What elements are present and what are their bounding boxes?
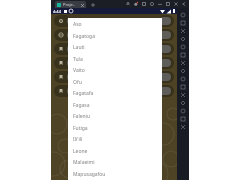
button[interactable]: Emulator control [177, 67, 189, 75]
button[interactable]: Lauti [68, 41, 162, 53]
button[interactable]: Notifications [132, 0, 140, 8]
button[interactable]: Emulator control [177, 35, 189, 43]
staticText: Tula [73, 56, 83, 63]
button[interactable]: New tab [89, 1, 96, 8]
button[interactable]: Emulator control [177, 107, 189, 115]
staticText: Fagatoga [73, 33, 95, 40]
staticText: Lauti [73, 44, 85, 51]
button[interactable]: Menu [180, 0, 188, 8]
staticText: Vaito [73, 67, 85, 74]
button[interactable]: Emulator control [177, 123, 189, 131]
button[interactable] [54, 15, 174, 27]
button[interactable]: Emulator control [177, 43, 189, 51]
button[interactable]: Close tab [80, 3, 84, 7]
button[interactable]: Profile [148, 0, 156, 8]
button[interactable] [54, 85, 174, 97]
staticText: Mapusagafou [73, 171, 106, 178]
button[interactable]: Fagasa [68, 99, 162, 111]
button[interactable]: Malaeimi [68, 156, 162, 168]
staticText: Futiga [73, 125, 88, 132]
button[interactable]: Aso [68, 18, 162, 30]
button[interactable] [54, 71, 174, 83]
staticText: Fagasa [73, 102, 90, 109]
button[interactable]: Emulator control [177, 59, 189, 67]
staticText: Proje.. [63, 2, 75, 7]
staticText: Leone [73, 148, 88, 155]
button[interactable]: Futiga [68, 122, 162, 134]
staticText: Fagatafa [73, 90, 94, 97]
button[interactable]: Apps [140, 0, 148, 8]
button[interactable]: Emulator control [177, 27, 189, 35]
button[interactable]: Vaito [68, 64, 162, 76]
button[interactable]: Emulator control [177, 91, 189, 99]
button[interactable]: Fagatafa [68, 87, 162, 99]
staticText: Malaeimi [73, 159, 95, 166]
staticText: Ofu [73, 79, 82, 86]
button[interactable]: Faleniu [68, 110, 162, 122]
button[interactable]: Ofu [68, 76, 162, 88]
button[interactable]: Mapusagafou [68, 168, 162, 180]
button[interactable] [54, 29, 174, 41]
button[interactable]: Emulator control [177, 75, 189, 83]
button[interactable]: Leone [68, 145, 162, 157]
button[interactable]: Emulator control [177, 83, 189, 91]
button[interactable]: Emulator control [177, 99, 189, 107]
button[interactable] [54, 43, 174, 55]
button[interactable]: Emulator control [177, 19, 189, 27]
button[interactable]: Ili'ili [68, 133, 162, 145]
button[interactable] [54, 57, 174, 69]
staticText: 4:44 [53, 9, 61, 14]
button[interactable]: Close [172, 0, 180, 8]
button[interactable]: Fagatoga [68, 30, 162, 42]
button[interactable]: Emulator control [177, 51, 189, 59]
button[interactable]: Tula [68, 53, 162, 65]
button[interactable]: Emulator control [177, 11, 189, 19]
button[interactable]: Proje.. [55, 1, 86, 8]
button[interactable]: Maximize [164, 0, 172, 8]
staticText: Aso [73, 21, 82, 28]
button[interactable]: Minimize [156, 0, 164, 8]
button[interactable]: Emulator control [177, 115, 189, 123]
staticText: Ili'ili [73, 136, 83, 143]
staticText: Faleniu [73, 113, 90, 120]
button[interactable]: Account [124, 0, 132, 8]
